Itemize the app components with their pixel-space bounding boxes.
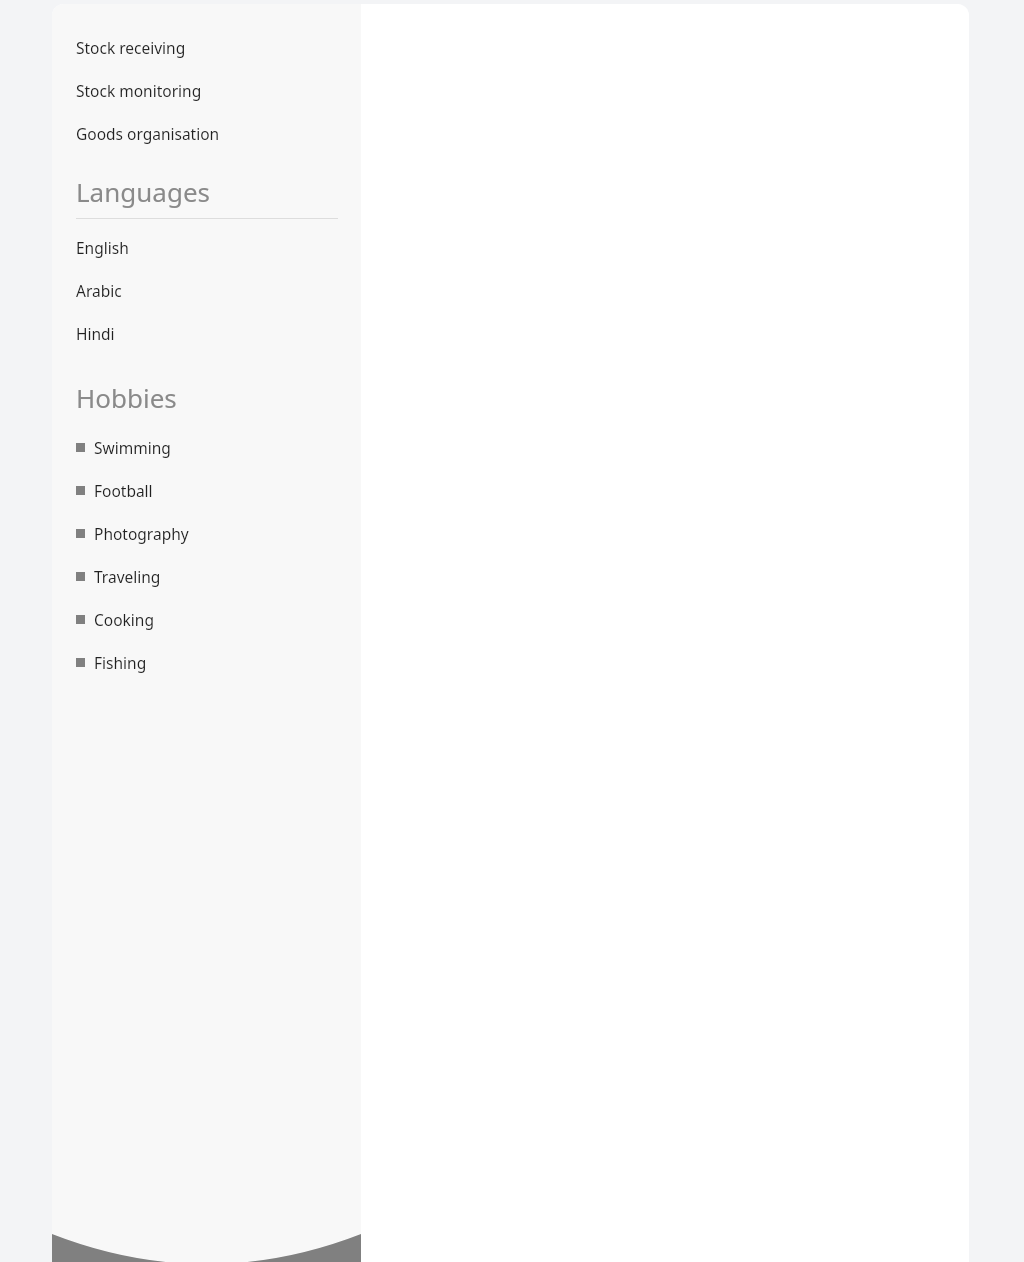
button[interactable]: Swimming — [52, 415, 361, 458]
button[interactable]: Goods organisation — [52, 101, 361, 144]
staticText: Traveling — [94, 566, 161, 587]
staticText: Languages — [76, 174, 211, 209]
staticText: Goods organisation — [76, 123, 220, 144]
button[interactable]: Cooking — [52, 587, 361, 630]
button[interactable]: Arabic — [52, 258, 361, 301]
staticText: Arabic — [76, 280, 122, 301]
button[interactable]: Stock monitoring — [52, 58, 361, 101]
button[interactable]: Stock receiving — [52, 4, 361, 58]
staticText: Stock monitoring — [76, 80, 202, 101]
button[interactable]: Hindi — [52, 301, 361, 344]
button[interactable]: Photography — [52, 501, 361, 544]
staticText: Hindi — [76, 323, 115, 344]
button[interactable]: English — [52, 219, 361, 258]
staticText: Hobbies — [76, 380, 177, 415]
staticText: Photography — [94, 523, 189, 544]
staticText: Cooking — [94, 609, 154, 630]
staticText: English — [76, 237, 129, 258]
staticText: Stock receiving — [76, 37, 186, 58]
staticText: Swimming — [94, 437, 171, 458]
button[interactable]: Football — [52, 458, 361, 501]
staticText: Fishing — [94, 652, 147, 673]
staticText: Football — [94, 480, 153, 501]
button[interactable]: Traveling — [52, 544, 361, 587]
button[interactable]: Fishing — [52, 630, 361, 673]
